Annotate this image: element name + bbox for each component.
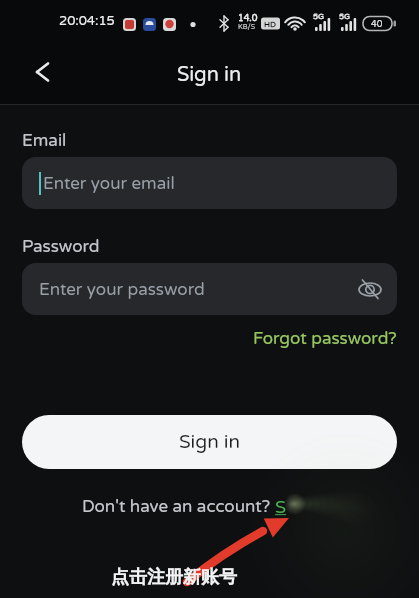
staticText: Enter your password: [39, 279, 205, 299]
staticText: Enter your email: [43, 173, 175, 193]
staticText: 40: [371, 19, 383, 30]
staticText: HD: [264, 20, 277, 30]
staticText: KB/S: [238, 23, 255, 31]
button[interactable]: Sign in: [22, 415, 397, 469]
button[interactable]: Enter your email: [22, 157, 397, 209]
staticText: Sign in: [177, 63, 242, 87]
staticText: Password: [22, 236, 100, 256]
staticText: 5G: [339, 12, 351, 22]
button[interactable]: S: [275, 496, 287, 516]
staticText: Don't have an account?: [82, 496, 275, 516]
staticText: 20:04:15: [59, 13, 115, 29]
button[interactable]: Enter your password: [22, 263, 397, 315]
staticText: Sign in: [179, 431, 241, 454]
staticText: Email: [22, 130, 67, 150]
staticText: 5G: [313, 12, 325, 22]
button[interactable]: Forgot password?: [253, 328, 397, 348]
staticText: 点击注册新账号: [111, 566, 237, 589]
staticText: 14.0: [238, 13, 258, 24]
button[interactable]: [27, 56, 59, 88]
